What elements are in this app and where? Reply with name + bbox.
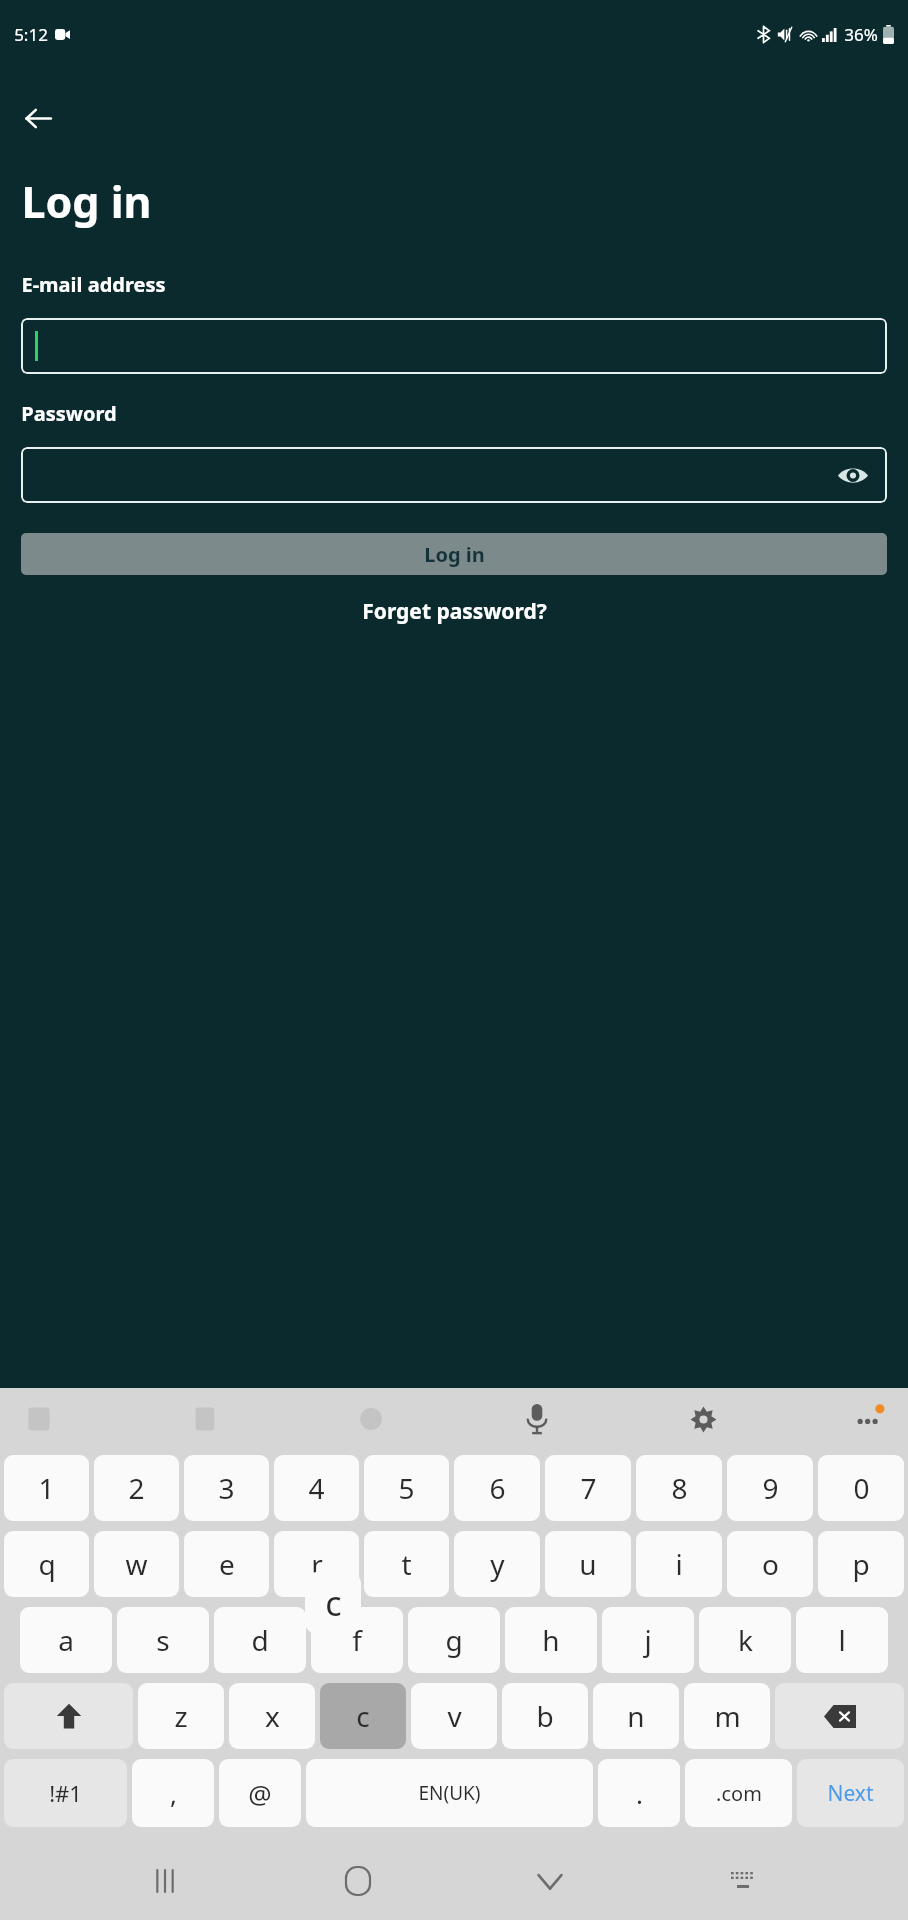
- button[interactable]: u: [545, 1531, 631, 1597]
- staticText: u: [579, 1545, 597, 1583]
- button[interactable]: .: [598, 1759, 680, 1827]
- staticText: .: [636, 1776, 643, 1811]
- staticText: Log in: [424, 541, 485, 568]
- button[interactable]: q: [4, 1531, 89, 1597]
- button[interactable]: Forget password?: [0, 597, 908, 626]
- staticText: m: [714, 1697, 741, 1735]
- button[interactable]: f: [311, 1607, 403, 1673]
- staticText: w: [125, 1545, 148, 1583]
- button[interactable]: [21, 318, 887, 374]
- button[interactable]: Stickers: [18, 1398, 60, 1440]
- button[interactable]: Show password: [21, 447, 887, 503]
- button[interactable]: 3: [184, 1455, 269, 1521]
- staticText: x: [265, 1697, 280, 1735]
- staticText: y: [490, 1545, 505, 1583]
- button[interactable]: i: [636, 1531, 722, 1597]
- button[interactable]: 7: [545, 1455, 631, 1521]
- button[interactable]: Log in: [21, 533, 887, 575]
- staticText: !#1: [49, 1778, 82, 1808]
- button[interactable]: !#1: [4, 1759, 127, 1827]
- button[interactable]: k: [699, 1607, 791, 1673]
- staticText: c: [325, 1580, 342, 1626]
- button[interactable]: x: [229, 1683, 315, 1749]
- staticText: 6: [489, 1469, 506, 1507]
- staticText: 4: [308, 1469, 325, 1507]
- button[interactable]: @: [219, 1759, 301, 1827]
- button[interactable]: Home: [330, 1853, 386, 1909]
- staticText: n: [627, 1697, 645, 1735]
- staticText: 0: [853, 1469, 870, 1507]
- button[interactable]: n: [593, 1683, 679, 1749]
- staticText: 1: [38, 1469, 55, 1507]
- staticText: Forget password?: [362, 597, 547, 626]
- button[interactable]: More options: [848, 1398, 890, 1440]
- button[interactable]: c: [320, 1683, 406, 1749]
- button[interactable]: Voice input: [516, 1398, 558, 1440]
- button[interactable]: 4: [274, 1455, 359, 1521]
- button[interactable]: l: [796, 1607, 888, 1673]
- button[interactable]: 0: [818, 1455, 904, 1521]
- staticText: e: [219, 1545, 235, 1583]
- button[interactable]: b: [502, 1683, 588, 1749]
- staticText: @: [248, 1776, 272, 1811]
- button[interactable]: 5: [364, 1455, 449, 1521]
- button[interactable]: h: [505, 1607, 597, 1673]
- staticText: E-mail address: [21, 271, 166, 298]
- staticText: 7: [580, 1469, 597, 1507]
- button[interactable]: Emoji: [350, 1398, 392, 1440]
- staticText: 36%: [844, 23, 878, 46]
- button[interactable]: 9: [727, 1455, 813, 1521]
- button[interactable]: v: [411, 1683, 497, 1749]
- staticText: 3: [218, 1469, 235, 1507]
- staticText: q: [38, 1545, 56, 1583]
- staticText: t: [401, 1545, 412, 1583]
- button[interactable]: s: [117, 1607, 209, 1673]
- staticText: 2: [128, 1469, 145, 1507]
- staticText: 8: [671, 1469, 688, 1507]
- staticText: f: [352, 1621, 362, 1659]
- staticText: a: [58, 1621, 74, 1659]
- button[interactable]: z: [138, 1683, 224, 1749]
- button[interactable]: Recents: [137, 1853, 193, 1909]
- staticText: s: [156, 1621, 170, 1659]
- button[interactable]: 6: [454, 1455, 540, 1521]
- staticText: ,: [170, 1776, 177, 1811]
- button[interactable]: Switch keyboard: [715, 1853, 771, 1909]
- button[interactable]: 1: [4, 1455, 89, 1521]
- button[interactable]: m: [684, 1683, 770, 1749]
- button[interactable]: ,: [132, 1759, 214, 1827]
- button[interactable]: Hide keyboard: [522, 1853, 578, 1909]
- button[interactable]: p: [818, 1531, 904, 1597]
- staticText: j: [644, 1621, 652, 1659]
- staticText: p: [852, 1545, 870, 1583]
- button[interactable]: .com: [685, 1759, 792, 1827]
- staticText: i: [675, 1545, 683, 1583]
- button[interactable]: Back: [12, 92, 64, 144]
- button[interactable]: o: [727, 1531, 813, 1597]
- button[interactable]: EN(UK): [306, 1759, 593, 1827]
- button[interactable]: Show password: [831, 453, 875, 497]
- button[interactable]: 8: [636, 1455, 722, 1521]
- button[interactable]: 2: [94, 1455, 179, 1521]
- staticText: r: [311, 1545, 323, 1583]
- staticText: 5:12: [14, 23, 48, 46]
- button[interactable]: Backspace: [775, 1683, 904, 1749]
- button[interactable]: y: [454, 1531, 540, 1597]
- button[interactable]: r: [274, 1531, 359, 1597]
- button[interactable]: Next: [797, 1759, 904, 1827]
- staticText: 9: [762, 1469, 779, 1507]
- staticText: k: [738, 1621, 753, 1659]
- button[interactable]: Keyboard settings: [682, 1398, 724, 1440]
- button[interactable]: GIF: [184, 1398, 226, 1440]
- button[interactable]: j: [602, 1607, 694, 1673]
- button[interactable]: Shift: [4, 1683, 133, 1749]
- button[interactable]: t: [364, 1531, 449, 1597]
- staticText: l: [838, 1621, 846, 1659]
- button[interactable]: a: [20, 1607, 112, 1673]
- button[interactable]: w: [94, 1531, 179, 1597]
- staticText: Next: [827, 1779, 874, 1808]
- button[interactable]: g: [408, 1607, 500, 1673]
- button[interactable]: e: [184, 1531, 269, 1597]
- staticText: d: [251, 1621, 269, 1659]
- button[interactable]: d: [214, 1607, 306, 1673]
